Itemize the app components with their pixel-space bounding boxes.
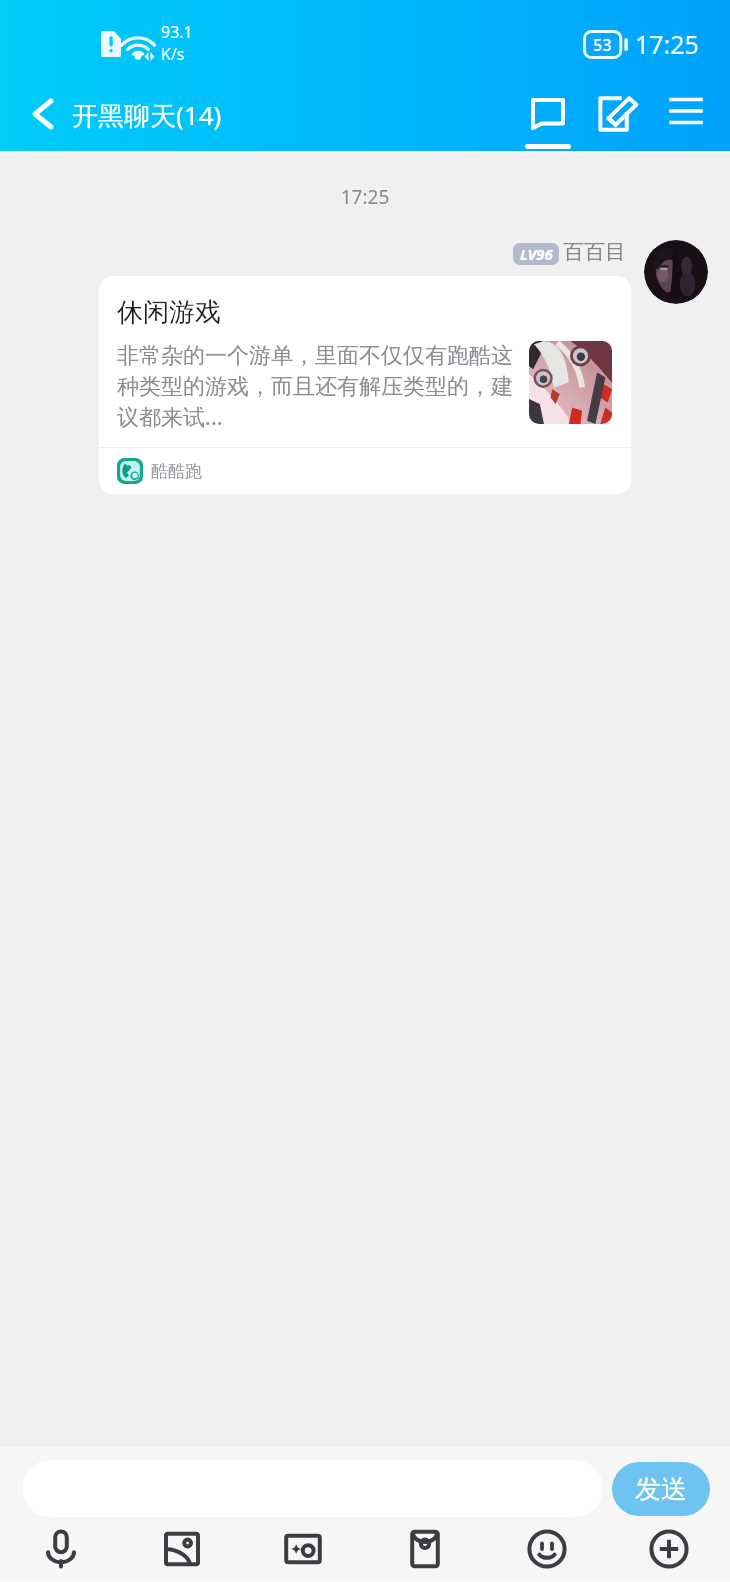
staticText: 休闲游戏: [117, 296, 221, 329]
button[interactable]: 发送: [612, 1462, 710, 1516]
button[interactable]: 休闲游戏: [99, 276, 631, 494]
staticText: 17:25: [635, 27, 699, 61]
button[interactable]: Chat: [508, 76, 588, 151]
staticText: 非常杂的一个游单，里面不仅仅有跑酷这种类型的游戏，而且还有解压类型的，建议都来试…: [117, 342, 516, 431]
button[interactable]: Red packet: [364, 1517, 486, 1580]
staticText: 发送: [635, 1473, 687, 1506]
button[interactable]: More: [608, 1517, 730, 1580]
staticText: K/s: [161, 43, 185, 65]
staticText: 开黑聊天(14): [72, 97, 222, 133]
button[interactable]: Menu: [651, 76, 721, 151]
button[interactable]: Emoji: [486, 1517, 608, 1580]
button[interactable]: Voice: [0, 1517, 121, 1580]
staticText: 百百目: [563, 239, 626, 265]
staticText: 17:25: [0, 184, 730, 210]
button[interactable]: Avatar: [644, 240, 708, 304]
button[interactable]: Sticker: [242, 1517, 364, 1580]
button[interactable]: Image: [121, 1517, 242, 1580]
staticText: 53: [583, 34, 622, 56]
button[interactable]: Compose: [582, 76, 654, 151]
button[interactable]: Back: [12, 76, 74, 151]
staticText: 酷酷跑: [151, 461, 202, 482]
staticText: LV96: [520, 244, 553, 264]
staticText: 93.1: [161, 21, 193, 43]
